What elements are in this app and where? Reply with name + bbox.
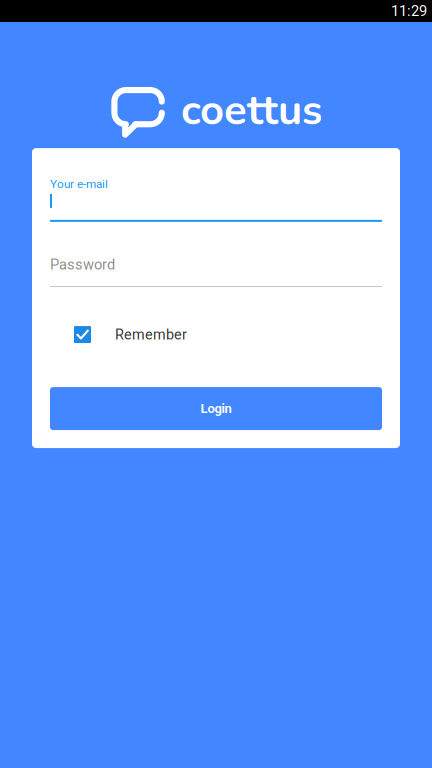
staticText: Your e-mail [50,177,108,191]
button[interactable]: Login [50,387,382,430]
staticText: Login [200,401,231,416]
staticText: Password [50,256,115,273]
staticText: 11:29 [391,2,427,20]
staticText: Remember [115,326,187,343]
staticText: coettus [181,82,322,139]
button[interactable]: Your e-mail [50,177,382,222]
button[interactable]: Password [50,256,382,287]
button[interactable]: Remember [50,326,382,343]
